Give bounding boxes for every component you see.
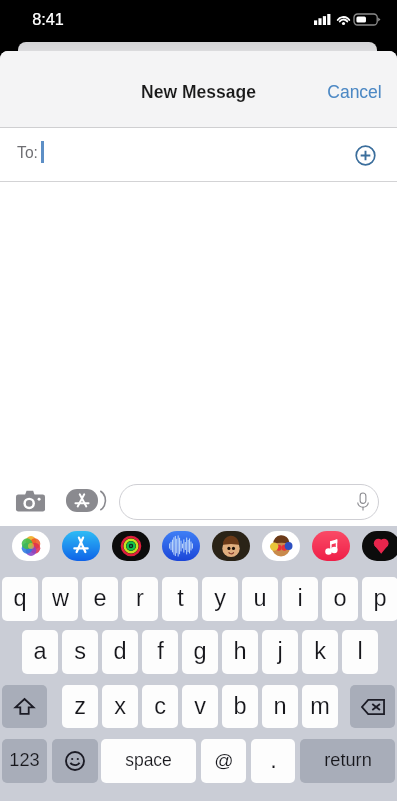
button[interactable]: w (42, 577, 78, 621)
button[interactable]: s (62, 630, 98, 674)
button[interactable]: App 5 (262, 531, 300, 561)
button[interactable]: q (2, 577, 38, 621)
button[interactable]: App 0 (12, 531, 50, 561)
button[interactable]: b (222, 685, 258, 728)
staticText: z (74, 693, 86, 719)
button[interactable]: App 2 (112, 531, 150, 561)
button[interactable]: o (322, 577, 358, 621)
staticText: d (113, 638, 127, 664)
staticText: w (52, 585, 69, 611)
staticText: k (314, 638, 326, 664)
button[interactable]: t (162, 577, 198, 621)
button[interactable]: App 4 (212, 531, 250, 561)
staticText: j (277, 638, 283, 664)
button[interactable]: l (342, 630, 378, 674)
button[interactable]: h (222, 630, 258, 674)
button[interactable]: a (22, 630, 58, 674)
staticText: 8:41 (32, 10, 64, 28)
staticText: m (310, 693, 330, 719)
button[interactable]: f (142, 630, 178, 674)
button[interactable]: Cancel (311, 76, 397, 108)
button[interactable]: App 3 (162, 531, 200, 561)
staticText: n (273, 693, 287, 719)
staticText: New Message (141, 82, 256, 102)
button[interactable]: App 6 (312, 531, 350, 561)
staticText: r (136, 585, 144, 611)
staticText: x (114, 693, 126, 719)
button[interactable]: return (300, 739, 395, 783)
button[interactable]: App 7 (362, 531, 397, 561)
staticText: i (297, 585, 303, 611)
button[interactable]: g (182, 630, 218, 674)
button[interactable]: n (262, 685, 298, 728)
button[interactable]: p (362, 577, 397, 621)
button[interactable]: emoji (52, 739, 98, 783)
staticText: c (154, 693, 166, 719)
staticText: Cancel (327, 82, 382, 102)
staticText: g (193, 638, 207, 664)
button[interactable]: k (302, 630, 338, 674)
staticText: l (357, 638, 363, 664)
staticText: t (177, 585, 184, 611)
button[interactable]: @ (201, 739, 246, 783)
button[interactable]: y (202, 577, 238, 621)
staticText: y (214, 585, 226, 611)
button[interactable]: Add contact (355, 145, 376, 166)
button[interactable]: m (302, 685, 338, 728)
button[interactable]: d (102, 630, 138, 674)
button[interactable]: shift (2, 685, 47, 728)
button[interactable]: u (242, 577, 278, 621)
button[interactable]: 123 (2, 739, 47, 783)
button[interactable]: e (82, 577, 118, 621)
staticText: space (125, 750, 172, 770)
button[interactable]: delete (350, 685, 395, 728)
button[interactable]: Camera (14, 486, 47, 516)
button[interactable]: z (62, 685, 98, 728)
button[interactable]: j (262, 630, 298, 674)
staticText: @ (214, 750, 234, 771)
button[interactable]: c (142, 685, 178, 728)
staticText: a (33, 638, 47, 664)
staticText: f (157, 638, 164, 664)
staticText: u (253, 585, 267, 611)
staticText: . (270, 747, 277, 773)
button[interactable] (119, 484, 379, 520)
staticText: b (233, 693, 247, 719)
button[interactable]: v (182, 685, 218, 728)
staticText: s (74, 638, 86, 664)
staticText: o (333, 585, 347, 611)
staticText: h (233, 638, 247, 664)
staticText: return (324, 750, 372, 770)
staticText: To: (17, 144, 38, 161)
staticText: p (373, 585, 387, 611)
staticText: 123 (9, 750, 40, 770)
button[interactable]: . (251, 739, 295, 783)
button[interactable]: x (102, 685, 138, 728)
staticText: v (194, 693, 206, 719)
button[interactable]: Apps (66, 489, 107, 512)
staticText: q (13, 585, 27, 611)
button[interactable]: App 1 (62, 531, 100, 561)
button[interactable]: i (282, 577, 318, 621)
staticText: e (93, 585, 107, 611)
button[interactable]: r (122, 577, 158, 621)
button[interactable]: space (101, 739, 196, 783)
